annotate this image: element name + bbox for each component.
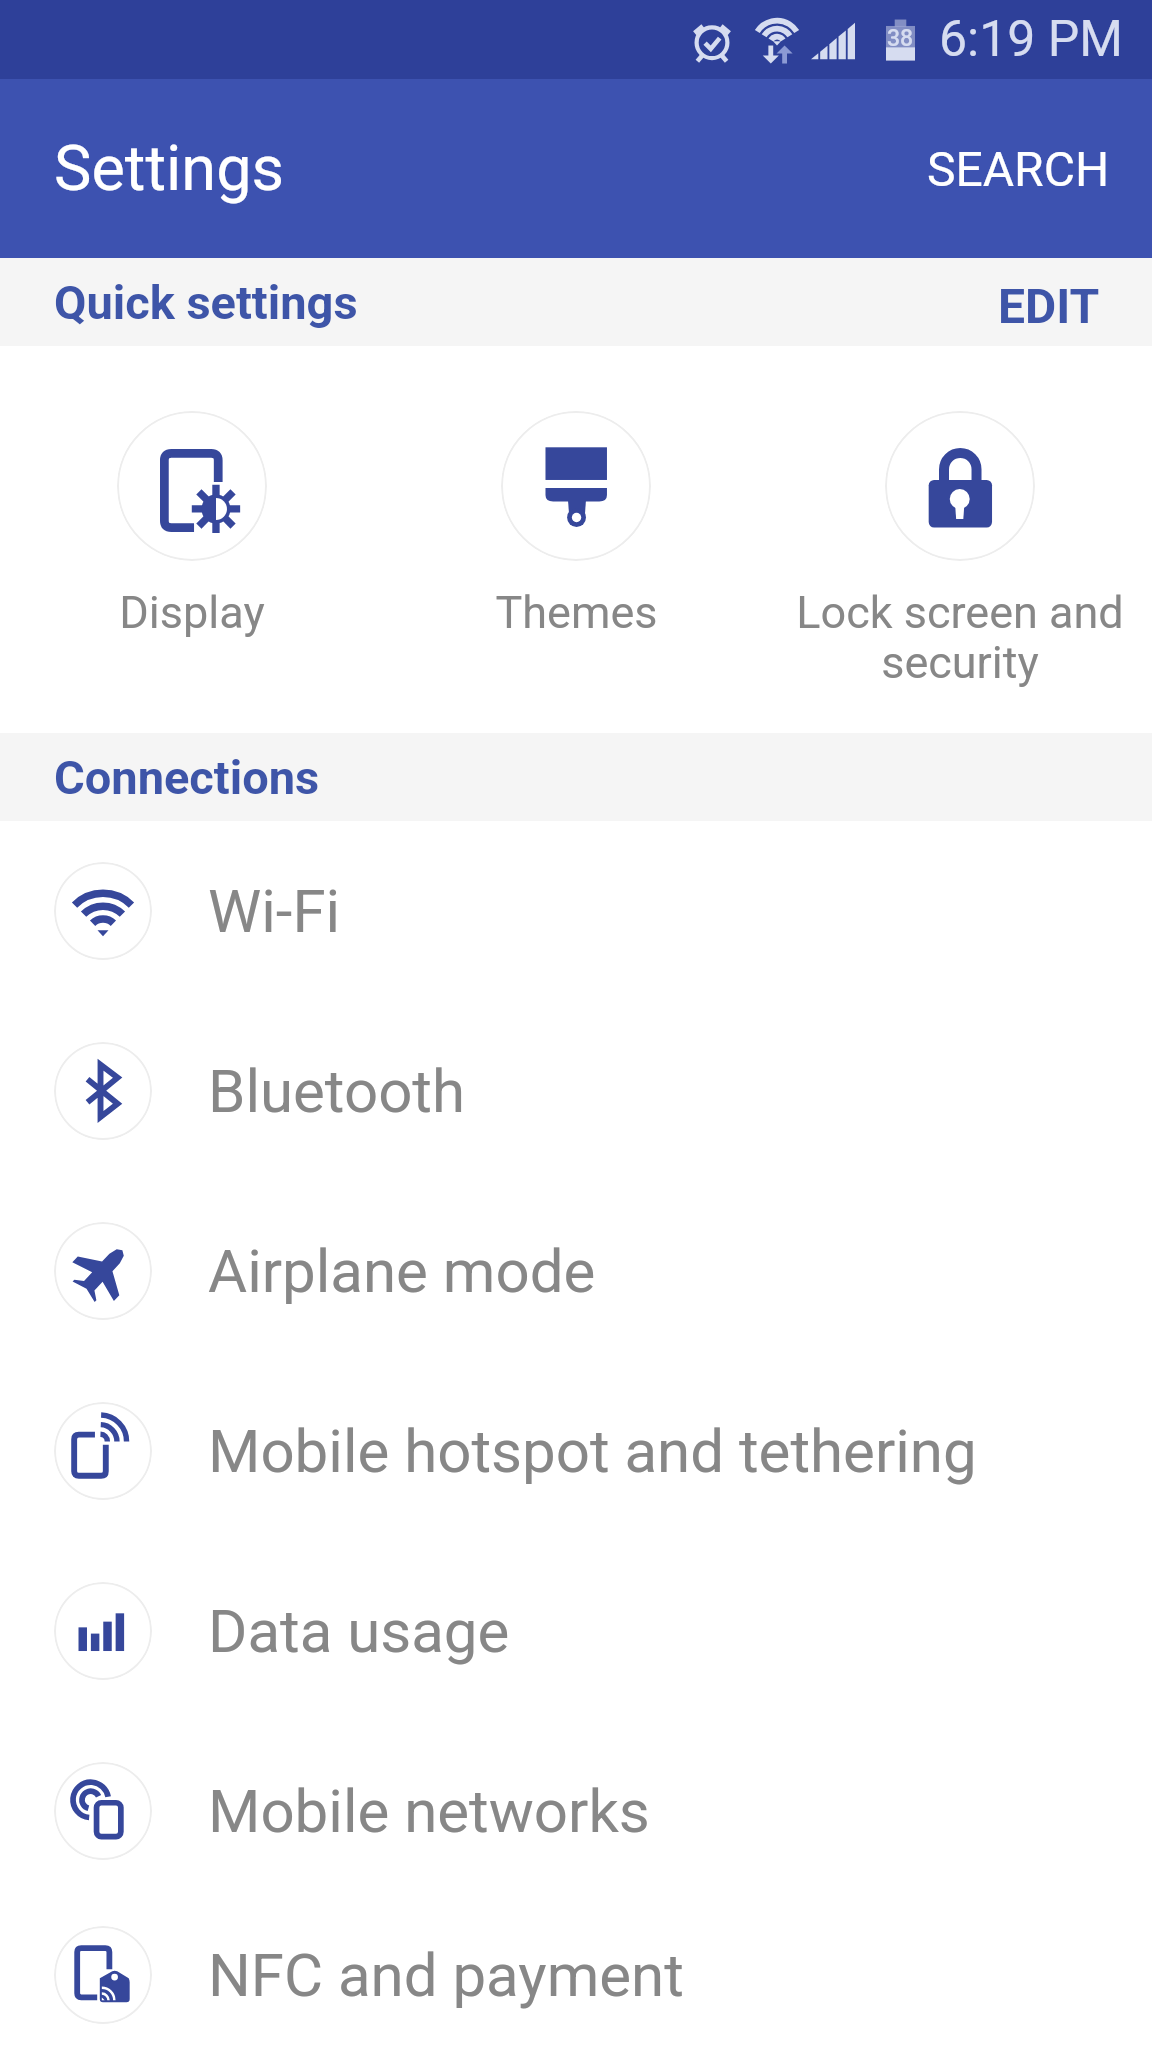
staticText: Airplane mode <box>208 1236 596 1306</box>
button[interactable]: EDIT <box>946 258 1152 346</box>
staticText: Quick settings <box>54 275 358 330</box>
button[interactable]: Display <box>0 346 384 639</box>
staticText: EDIT <box>998 278 1100 326</box>
staticText: Display <box>119 586 265 639</box>
button[interactable]: Mobile hotspot and tethering <box>0 1361 1152 1541</box>
staticText: Data usage <box>208 1596 510 1666</box>
staticText: Settings <box>54 132 285 206</box>
staticText: Connections <box>54 750 320 805</box>
button[interactable]: NFC and payment <box>0 1901 1152 2048</box>
button[interactable]: Wi-Fi <box>0 821 1152 1001</box>
staticText: Lock screen and security <box>768 586 1152 689</box>
staticText: Mobile hotspot and tethering <box>208 1416 977 1486</box>
staticText: NFC and payment <box>208 1940 684 2010</box>
button[interactable]: Bluetooth <box>0 1001 1152 1181</box>
button[interactable]: Data usage <box>0 1541 1152 1721</box>
button[interactable]: SEARCH <box>885 101 1152 237</box>
button[interactable]: Themes <box>384 346 768 639</box>
staticText: 6:19 PM <box>939 10 1124 69</box>
staticText: 38 <box>887 25 914 52</box>
staticText: Wi-Fi <box>208 876 341 946</box>
staticText: Bluetooth <box>208 1056 466 1126</box>
staticText: SEARCH <box>927 141 1110 197</box>
staticText: Mobile networks <box>208 1776 650 1846</box>
button[interactable]: Airplane mode <box>0 1181 1152 1361</box>
staticText: Themes <box>495 586 658 639</box>
button[interactable]: Mobile networks <box>0 1721 1152 1901</box>
button[interactable]: Lock screen and security <box>768 346 1152 689</box>
